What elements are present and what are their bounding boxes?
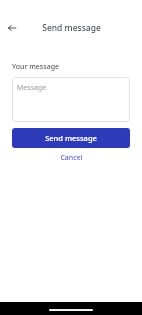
staticText: Message [17,83,47,93]
button[interactable]: Cancel [52,151,91,165]
button[interactable]: Back [5,21,19,35]
staticText: Send message [45,133,97,143]
button[interactable]: Message [12,77,130,122]
staticText: Your message [12,62,59,72]
staticText: Send message [42,22,101,34]
staticText: Cancel [60,153,83,163]
button[interactable]: Send message [12,128,130,148]
